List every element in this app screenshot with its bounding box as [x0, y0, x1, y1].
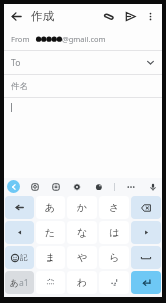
- button[interactable]: 戻る: [7, 180, 20, 193]
- staticText: か: [77, 201, 88, 214]
- button[interactable]: UNDO: [5, 196, 34, 219]
- button[interactable]: わ: [67, 271, 97, 294]
- button[interactable]: ENTER: [131, 271, 161, 294]
- button[interactable]: SPACE: [131, 246, 161, 269]
- staticText: 記: [20, 253, 28, 262]
- staticText: To: [11, 57, 21, 69]
- staticText: a1: [19, 277, 29, 289]
- button[interactable]: DELETE: [131, 196, 161, 219]
- staticText: な: [77, 226, 88, 239]
- button[interactable]: た: [36, 221, 65, 244]
- button[interactable]: PUNCT: [36, 271, 65, 294]
- staticText: From: [11, 34, 30, 44]
- button[interactable]: 添付: [97, 5, 119, 27]
- button[interactable]: ま: [36, 246, 65, 269]
- button[interactable]: [4, 98, 162, 178]
- button[interactable]: From: [4, 28, 162, 50]
- button[interactable]: さ: [99, 196, 129, 219]
- staticText: た: [45, 226, 56, 239]
- button[interactable]: sticker: [28, 180, 41, 193]
- staticText: 件名: [11, 81, 28, 92]
- button[interactable]: は: [99, 221, 129, 244]
- staticText: わ: [77, 276, 88, 289]
- staticText: @gmail.com: [62, 34, 106, 44]
- button[interactable]: その他のオプション: [141, 7, 159, 25]
- staticText: さ: [109, 201, 120, 214]
- button[interactable]: LEFT: [5, 221, 34, 244]
- staticText: あ: [45, 201, 56, 214]
- button[interactable]: EMOJI: [5, 246, 34, 269]
- button[interactable]: To: [4, 51, 162, 74]
- button[interactable]: や: [67, 246, 97, 269]
- staticText: ま: [45, 251, 56, 264]
- button[interactable]: settings: [70, 180, 83, 193]
- button[interactable]: PUNCT2: [99, 271, 129, 294]
- staticText: 作成: [31, 9, 54, 23]
- button[interactable]: clipboard: [49, 180, 62, 193]
- button[interactable]: あ: [36, 196, 65, 219]
- button[interactable]: ら: [99, 246, 129, 269]
- staticText: や: [77, 251, 88, 264]
- button[interactable]: MODE: [5, 271, 34, 294]
- button[interactable]: palette: [92, 180, 105, 193]
- staticText: ら: [109, 251, 120, 264]
- staticText: あ: [10, 278, 19, 289]
- button[interactable]: 件名: [4, 75, 162, 97]
- button[interactable]: 戻る: [4, 4, 28, 28]
- button[interactable]: more: [124, 180, 137, 193]
- button[interactable]: mic: [146, 180, 159, 193]
- staticText: は: [109, 226, 120, 239]
- button[interactable]: か: [67, 196, 97, 219]
- button[interactable]: な: [67, 221, 97, 244]
- button[interactable]: RIGHT: [131, 221, 161, 244]
- button[interactable]: 送信: [119, 5, 141, 27]
